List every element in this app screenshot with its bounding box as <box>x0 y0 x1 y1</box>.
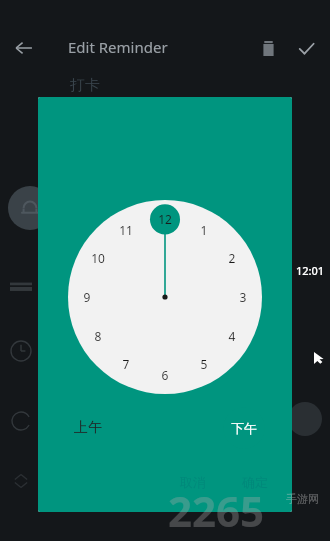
button[interactable]: Back <box>8 32 40 64</box>
staticText: 2265 <box>168 482 265 539</box>
staticText: 手游网 <box>286 492 319 506</box>
staticText: 11 <box>115 222 137 238</box>
button[interactable]: 下午 <box>223 407 265 449</box>
staticText: 10 <box>87 250 109 266</box>
staticText: 4 <box>221 328 243 344</box>
button[interactable]: 12 <box>90 275 143 338</box>
staticText: 6 <box>154 367 176 383</box>
button[interactable]: :01 <box>143 275 207 338</box>
staticText: 9 <box>76 289 98 305</box>
button[interactable]: Notes <box>10 276 32 298</box>
staticText: 3 <box>232 289 254 305</box>
staticText: 7 <box>115 356 137 372</box>
button[interactable]: 上午 <box>74 419 102 437</box>
button[interactable]: Time <box>10 340 32 362</box>
staticText: 1 <box>193 222 215 238</box>
staticText: 12:01 <box>296 263 325 278</box>
button[interactable]: Expand <box>12 472 30 490</box>
staticText: 打卡 <box>70 76 100 95</box>
button[interactable]: Repeat <box>10 410 32 432</box>
staticText: 12 <box>154 211 176 227</box>
button[interactable]: Reminder type <box>8 186 52 230</box>
button[interactable]: Clock face <box>68 200 262 394</box>
staticText: 2 <box>221 250 243 266</box>
staticText: Edit Reminder <box>68 37 168 57</box>
button[interactable]: Delete <box>252 32 284 64</box>
staticText: 下午 <box>231 420 257 436</box>
button[interactable]: Save <box>290 32 322 64</box>
staticText: 5 <box>193 356 215 372</box>
button[interactable]: Add <box>288 402 322 436</box>
staticText: 8 <box>87 328 109 344</box>
